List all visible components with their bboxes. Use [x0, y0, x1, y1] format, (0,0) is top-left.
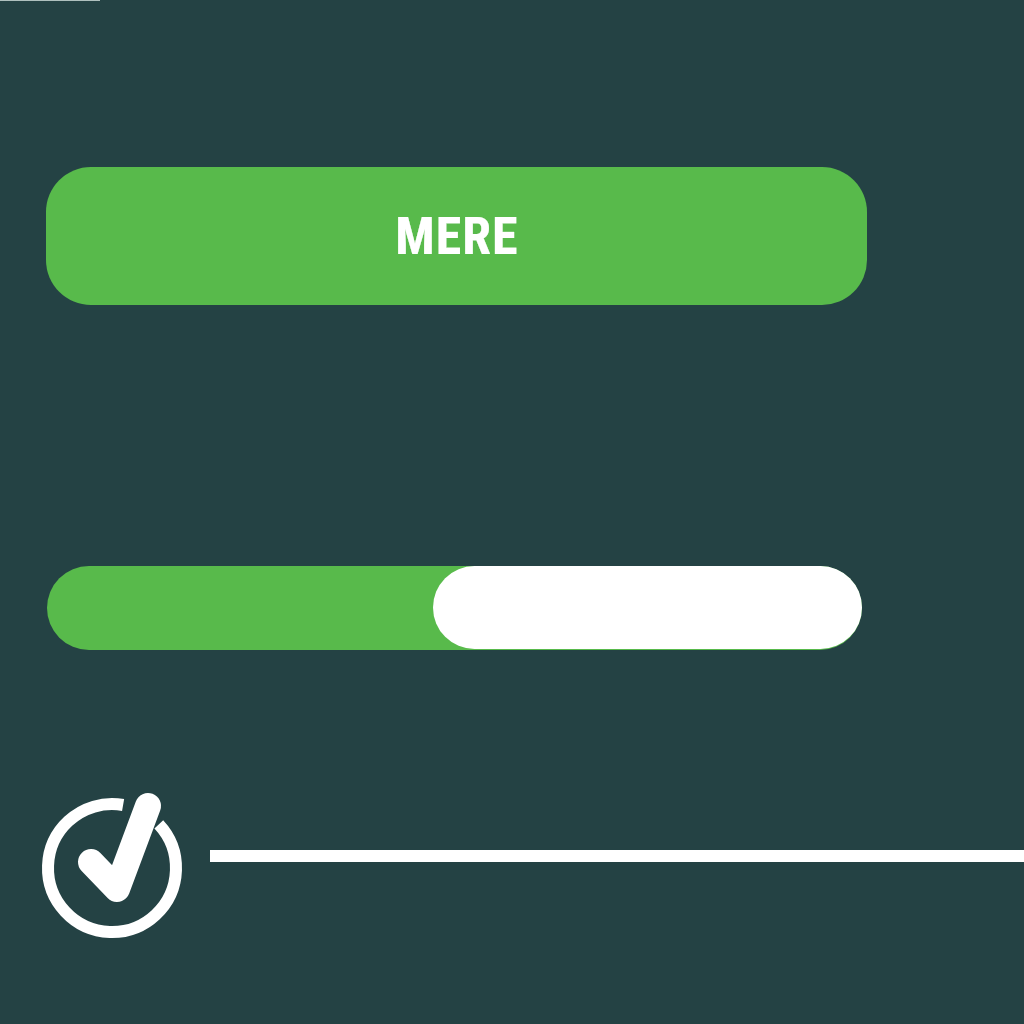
button[interactable]: Progress slider — [47, 566, 862, 650]
staticText: MERE — [395, 206, 519, 267]
button[interactable]: MERE — [46, 167, 867, 305]
button[interactable]: Completed — [30, 770, 230, 970]
